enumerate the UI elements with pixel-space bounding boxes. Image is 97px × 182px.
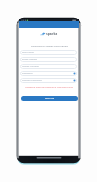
staticText: Password [22,72,33,75]
staticText: SIGN UP [45,97,55,100]
button[interactable]: First Name [20,50,77,55]
button[interactable]: Mobile Number [20,64,77,69]
button[interactable]: Email Address [20,57,77,62]
staticText: sparkz [46,31,58,36]
button[interactable]: SIGN UP [21,96,78,101]
staticText: Password must be minimum 8 characters lo… [25,86,73,89]
button[interactable]: Confirm Password [20,78,77,83]
other: Toggle password visibility [73,72,76,75]
staticText: Mobile Number [22,65,39,68]
other: Toggle password visibility [73,79,76,82]
staticText: First Name [22,51,34,54]
staticText: Welcome to Sparkz Card Centre [31,44,68,47]
staticText: Confirm Password [22,79,42,82]
staticText: Email Address [22,58,38,61]
button[interactable]: Password [20,71,77,76]
